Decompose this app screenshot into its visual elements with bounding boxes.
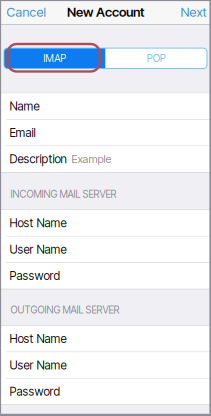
button[interactable]: Email [0,120,211,146]
button[interactable]: Name [0,93,211,119]
button[interactable]: Cancel [0,0,51,24]
staticText: Host Name [10,332,67,346]
staticText: INCOMING MAIL SERVER [10,188,116,200]
button[interactable]: User Name [0,236,211,262]
staticText: Password [10,384,61,399]
button[interactable]: Password [0,263,211,289]
staticText: Description [10,152,67,166]
staticText: Cancel [6,4,45,20]
button[interactable]: Host Name [0,326,211,352]
staticText: IMAP [43,52,66,64]
staticText: Example [72,152,112,166]
staticText: Host Name [10,216,67,230]
staticText: Next [180,4,206,20]
staticText: POP [147,52,166,64]
staticText: Email [10,126,36,140]
button[interactable]: Password [0,379,211,404]
button[interactable]: POP [105,48,207,69]
staticText: Name [10,99,40,113]
button[interactable]: IMAP [4,48,105,69]
button[interactable]: Next [174,0,211,24]
staticText: User Name [10,358,67,372]
staticText: New Account [67,4,144,20]
button[interactable]: Host Name [0,210,211,236]
staticText: Password [10,269,61,283]
staticText: User Name [10,242,67,256]
button[interactable]: Description [0,146,211,172]
button[interactable]: User Name [0,352,211,378]
staticText: OUTGOING MAIL SERVER [10,304,119,316]
